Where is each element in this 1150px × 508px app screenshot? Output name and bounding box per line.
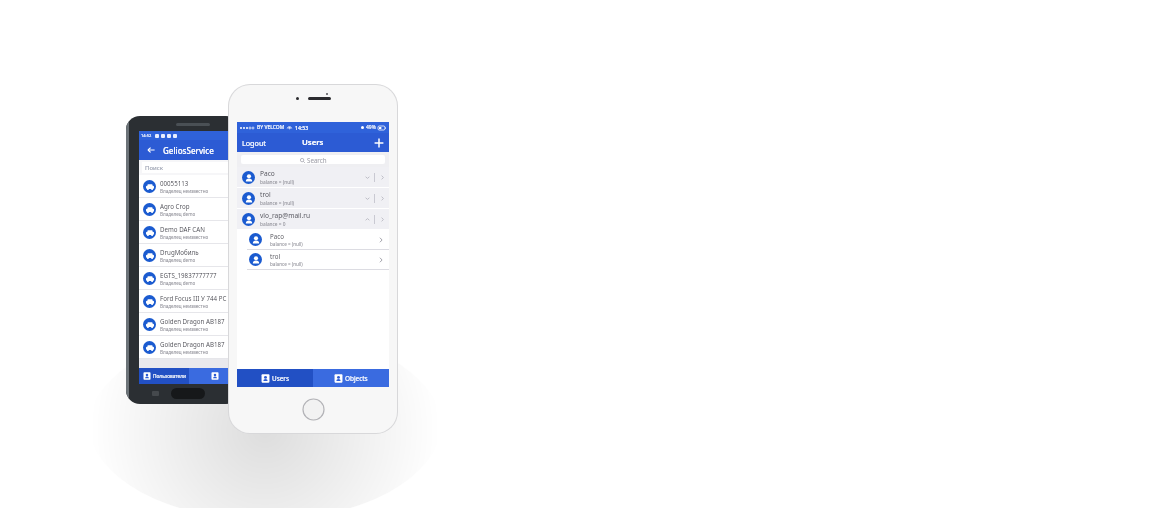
button[interactable]: Paco	[237, 230, 389, 249]
staticText: balance = (null)	[260, 179, 295, 186]
staticText: Paco	[260, 169, 275, 178]
button[interactable]	[189, 368, 240, 384]
button[interactable]: Home	[302, 398, 325, 421]
staticText: Владелец demo	[160, 211, 196, 217]
staticText: 00055113	[160, 179, 189, 187]
staticText: 14:53	[295, 124, 309, 131]
staticText: Владелец demo	[160, 257, 196, 263]
staticText: Users	[272, 374, 290, 383]
staticText: Search	[307, 156, 327, 164]
button[interactable]: Users	[237, 369, 313, 387]
staticText: balance = (null)	[270, 241, 303, 247]
button[interactable]: Add user	[369, 133, 389, 152]
button[interactable]: Golden Dragon AB187	[139, 313, 240, 335]
staticText: 14:52	[141, 133, 152, 138]
staticText: BY VELCOM	[257, 124, 285, 131]
button[interactable]: Ford Focus III У 744 РС 77	[139, 290, 240, 312]
button[interactable]: Objects	[313, 369, 389, 387]
button[interactable]: Поиск	[142, 162, 237, 173]
staticText: balance = (null)	[260, 200, 295, 207]
staticText: Paco	[270, 232, 284, 240]
button[interactable]: Logout	[237, 133, 271, 152]
button[interactable]: vlo_rap@mail.ru	[237, 209, 389, 229]
staticText: Demo DAF CAN	[160, 225, 205, 233]
staticText: Golden Dragon AB187	[160, 340, 225, 348]
staticText: Владелец неизвестно	[160, 349, 209, 355]
staticText: DrugМобиль	[160, 248, 199, 256]
button[interactable]: Search	[241, 155, 385, 164]
staticText: Agro Crop	[160, 202, 190, 210]
staticText: Golden Dragon AB187	[160, 317, 225, 325]
button[interactable]: trol	[237, 250, 389, 269]
staticText: Logout	[242, 138, 266, 148]
staticText: Ford Focus III У 744 РС 77	[160, 294, 236, 302]
button[interactable]: Open details	[375, 209, 389, 229]
staticText: Поиск	[145, 164, 163, 172]
staticText: 0	[235, 133, 238, 138]
button[interactable]: 00055113	[139, 175, 240, 197]
staticText: vlo_rap@mail.ru	[260, 211, 311, 220]
button[interactable]: Paco	[237, 167, 389, 187]
staticText: Пользователи	[153, 373, 186, 380]
staticText: trol	[270, 252, 281, 260]
staticText: Objects	[345, 374, 368, 383]
staticText: Владелец неизвестно	[160, 303, 209, 309]
button[interactable]: Agro Crop	[139, 198, 240, 220]
button[interactable]: Пользователи	[139, 368, 189, 384]
staticText: EGTS_19837777777	[160, 271, 217, 279]
button[interactable]: Demo DAF CAN	[139, 221, 240, 243]
button[interactable]: EGTS_19837777777	[139, 267, 240, 289]
button[interactable]: DrugМобиль	[139, 244, 240, 266]
staticText: Владелец неизвестно	[160, 188, 209, 194]
button[interactable]: Golden Dragon AB187	[139, 336, 240, 358]
staticText: 49%	[366, 124, 376, 131]
staticText: GeliosService	[163, 145, 214, 156]
button[interactable]: Open details	[375, 188, 389, 208]
staticText: Users	[302, 137, 324, 148]
staticText: balance = (null)	[270, 261, 303, 267]
staticText: Владелец demo	[160, 280, 196, 286]
staticText: balance = 0	[260, 221, 286, 228]
button[interactable]: Back	[145, 144, 157, 156]
button[interactable]: trol	[237, 188, 389, 208]
button[interactable]: Expand	[360, 188, 374, 208]
staticText: trol	[260, 190, 271, 199]
button[interactable]: Expand	[360, 167, 374, 187]
staticText: Владелец неизвестно	[160, 326, 209, 332]
staticText: Владелец неизвестно	[160, 234, 209, 240]
button[interactable]: Open details	[375, 167, 389, 187]
button[interactable]: Collapse	[360, 209, 374, 229]
